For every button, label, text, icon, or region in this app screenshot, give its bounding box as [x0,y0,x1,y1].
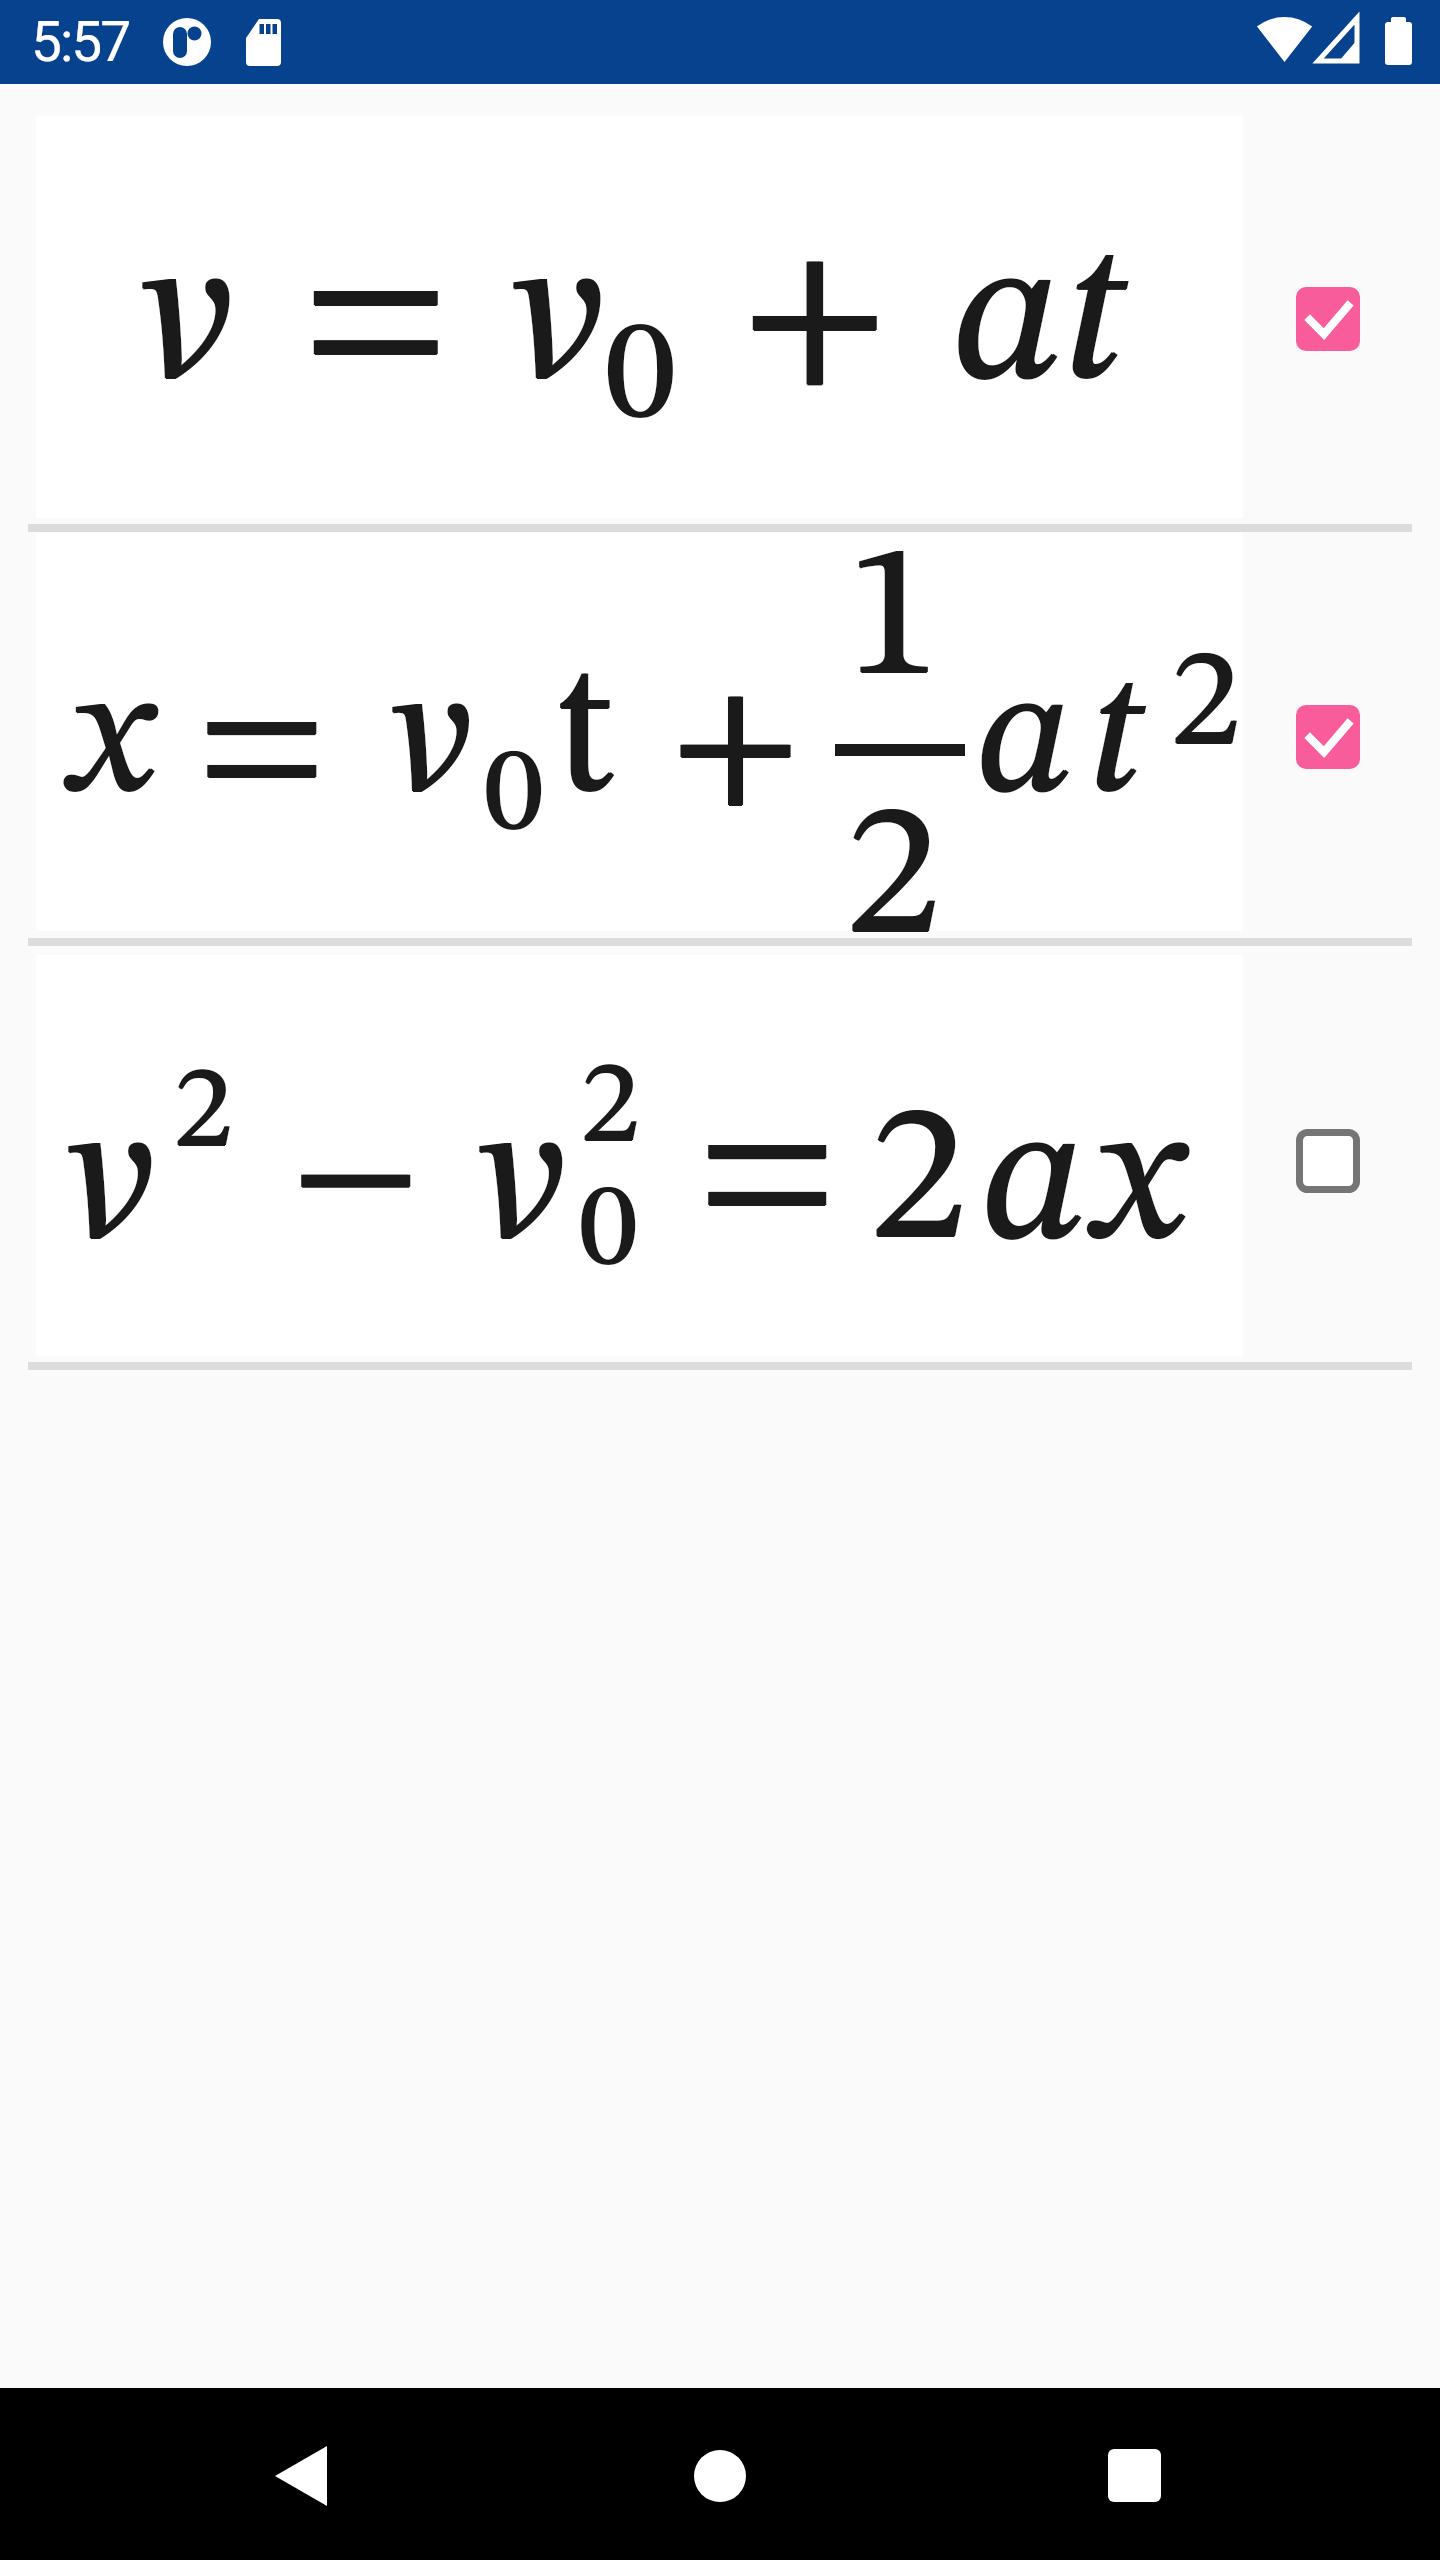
staticText: v [481,1087,565,1282]
staticText: = [198,659,328,839]
staticText: − [291,1091,421,1271]
staticText: 0 [605,307,676,450]
staticText: = [698,1077,839,1272]
staticText: 1 [845,527,940,717]
staticText: = [197,660,327,840]
staticText: = [697,1078,838,1273]
staticText: t [1088,653,1142,833]
staticText: + [670,660,802,842]
staticText: v [479,1087,563,1282]
staticText: v [70,1087,154,1282]
staticText: t [1089,652,1143,832]
staticText: a [983,1087,1088,1282]
staticText: 2 [846,787,941,977]
button[interactable] [36,533,1243,931]
staticText: 2 [845,786,940,976]
staticText: v [515,220,603,425]
staticText: 2 [1170,636,1240,776]
button[interactable] [674,2430,766,2522]
staticText: = [303,220,451,425]
staticText: v [392,652,470,832]
button[interactable] [1296,287,1360,351]
staticText: a [978,652,1075,832]
staticText: 2 [871,1087,968,1282]
staticText: a [982,1088,1087,1283]
staticText: 0 [604,306,675,449]
staticText: x [1096,1087,1185,1282]
staticText: 0 [485,737,545,857]
staticText: = [302,221,450,426]
button[interactable] [255,2446,347,2506]
staticText: − [292,1090,422,1270]
button[interactable] [1296,705,1360,769]
staticText: x [72,652,154,832]
staticText: 0 [579,1174,638,1292]
staticText: v [514,221,602,426]
staticText: x [71,653,153,833]
button[interactable] [36,955,1243,1356]
staticText: = [196,659,326,839]
staticText: v [394,652,472,832]
staticText: 2 [581,1051,640,1169]
staticText: 5:57 [31,10,130,74]
staticText: 1 [847,527,942,717]
staticText: x [1094,1087,1183,1282]
staticText: v [69,1088,153,1283]
staticText: a [977,653,1074,833]
staticText: v [142,220,230,425]
button[interactable] [1296,1129,1360,1193]
staticText: + [740,220,888,425]
staticText: v [480,1088,564,1283]
staticText: at [954,220,1125,425]
staticText: t [555,644,615,834]
staticText: 2 [582,1050,641,1168]
staticText: a [981,1087,1086,1282]
staticText: v [68,1087,152,1282]
staticText: t [553,644,613,834]
staticText: − [290,1090,420,1270]
staticText: t [1087,652,1141,832]
staticText: 2 [847,786,942,976]
staticText: 2 [870,1088,967,1283]
staticText: 2 [580,1050,639,1168]
button[interactable] [1088,2430,1180,2522]
staticText: = [301,220,449,425]
staticText: v [513,220,601,425]
staticText: at [953,221,1124,426]
staticText: 2 [1171,637,1241,777]
staticText: 0 [484,738,544,858]
staticText: t [554,645,614,835]
staticText: x [70,652,152,832]
staticText: at [952,220,1123,425]
staticText: + [742,220,890,425]
staticText: + [741,221,889,426]
staticText: 0 [580,1173,639,1291]
button[interactable] [36,116,1243,518]
staticText: 2 [869,1087,966,1282]
staticText: a [976,652,1073,832]
staticText: 0 [606,306,677,449]
staticText: 2 [173,1055,232,1173]
staticText: 2 [1172,636,1242,776]
staticText: + [671,659,803,841]
staticText: v [144,220,232,425]
staticText: 0 [578,1173,637,1291]
staticText: 0 [483,737,543,857]
staticText: 2 [175,1055,234,1173]
staticText: + [669,659,801,841]
staticText: = [696,1077,837,1272]
staticText: 2 [174,1056,233,1174]
staticText: x [1095,1088,1184,1283]
staticText: v [143,221,231,426]
staticText: 1 [846,528,941,718]
staticText: v [393,653,471,833]
